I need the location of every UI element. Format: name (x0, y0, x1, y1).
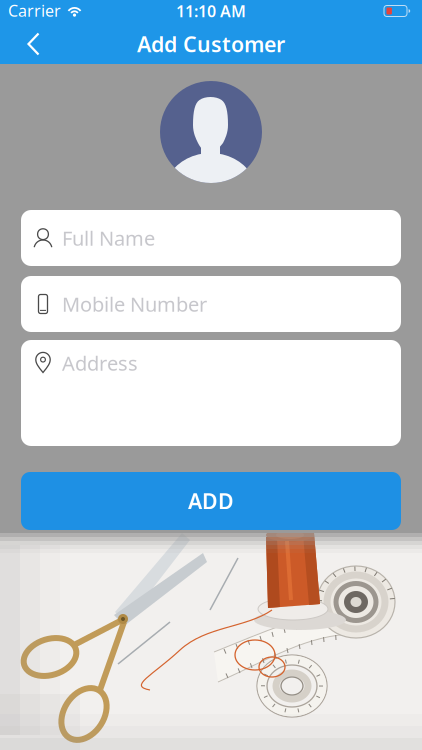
staticText: Carrier (8, 0, 61, 21)
staticText: Mobile Number (62, 291, 207, 317)
staticText: 11:10 AM (176, 0, 246, 22)
button[interactable]: Mobile Number (21, 276, 401, 332)
button[interactable]: Back (0, 0, 60, 64)
staticText: Address (62, 350, 138, 376)
button[interactable]: Add customer photo (160, 81, 262, 183)
button[interactable]: Full Name (21, 210, 401, 266)
button[interactable]: ADD (21, 472, 401, 530)
button[interactable]: Address (21, 340, 401, 446)
staticText: Add Customer (137, 30, 285, 58)
staticText: Full Name (62, 225, 155, 251)
staticText: ADD (188, 487, 234, 515)
